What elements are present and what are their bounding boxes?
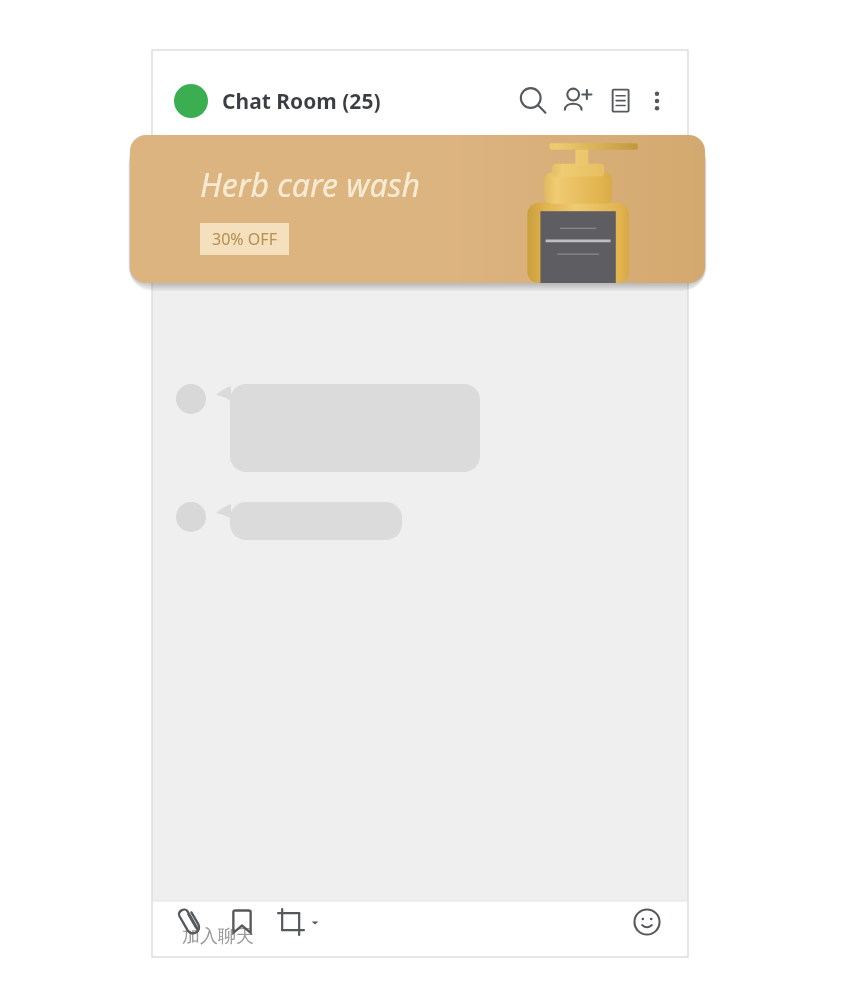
button[interactable] [176, 502, 688, 540]
button[interactable]: Crop options [274, 905, 322, 939]
button[interactable]: Search [514, 82, 552, 120]
staticText: Chat Room (25) [222, 87, 381, 116]
button[interactable]: Add member [558, 82, 596, 120]
button[interactable]: Emoji [628, 903, 666, 941]
button[interactable]: More options [642, 86, 672, 116]
staticText: 加入聊天 [182, 925, 254, 948]
button[interactable]: Bookmark [224, 904, 260, 940]
button[interactable]: 30% OFF [212, 228, 277, 250]
button[interactable] [174, 84, 208, 118]
staticText: 30% OFF [212, 228, 277, 250]
button[interactable]: Attach file [174, 904, 210, 940]
button[interactable] [176, 384, 688, 472]
button[interactable]: Herb care wash [130, 135, 705, 283]
staticText: Herb care wash [200, 163, 421, 207]
button[interactable]: Notes [602, 82, 640, 120]
